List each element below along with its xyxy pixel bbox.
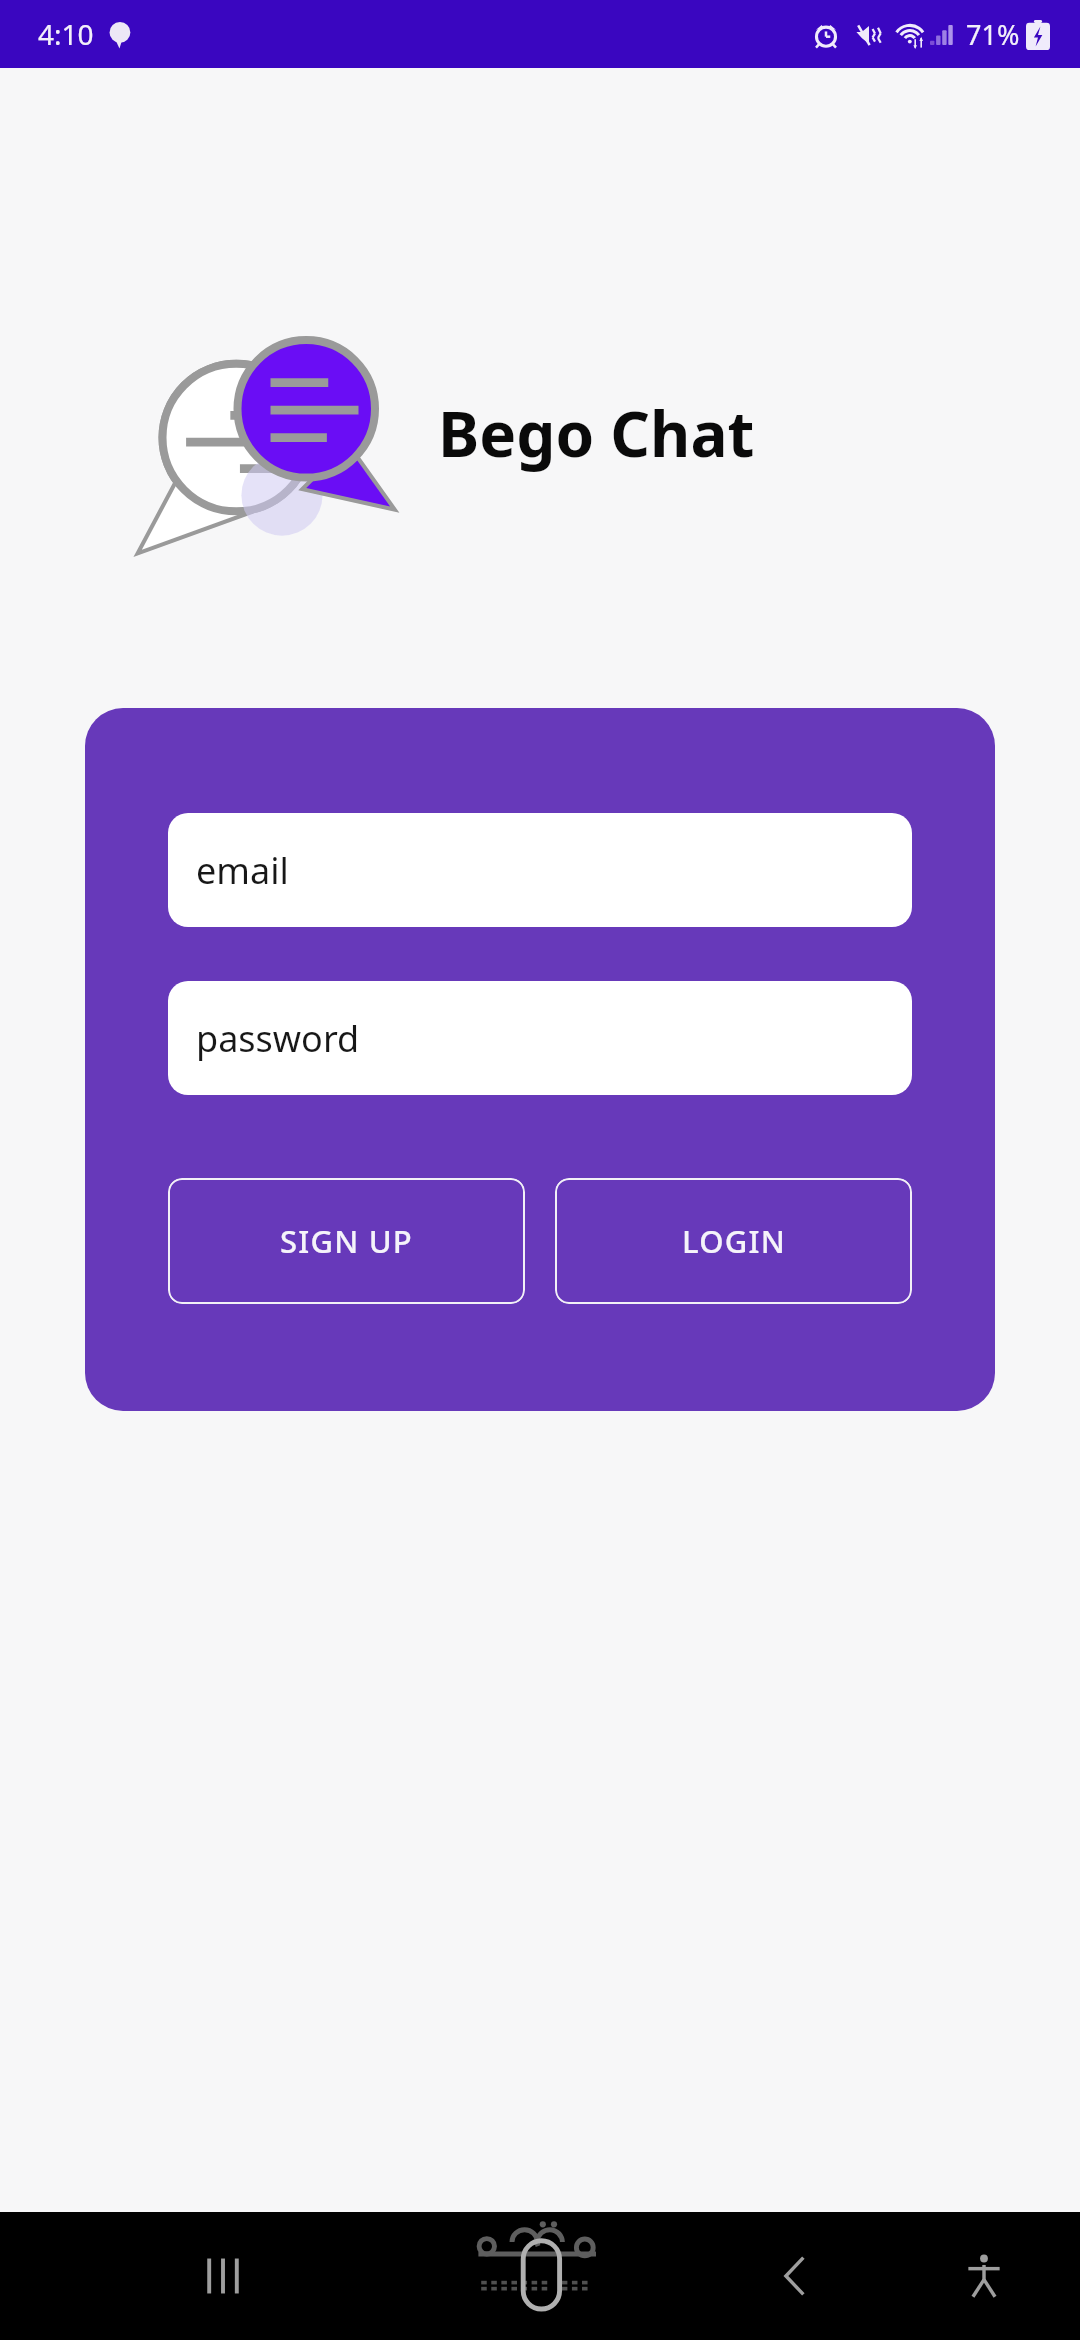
staticText: password [196,1014,360,1063]
button[interactable]: password [168,981,912,1095]
staticText: 4:10 [38,15,94,53]
staticText: SIGN UP [280,1220,413,1262]
button[interactable]: Accessibility [936,2228,1032,2324]
staticText: 71% [966,16,1020,53]
button[interactable]: SIGN UP [168,1178,525,1304]
staticText: Bego Chat [438,391,755,475]
button[interactable]: Back [748,2228,844,2324]
staticText: email [196,846,289,895]
button[interactable]: Home [470,2221,610,2331]
staticText: LOGIN [682,1220,786,1262]
button[interactable]: LOGIN [555,1178,912,1304]
button[interactable]: Recent apps [175,2228,271,2324]
button[interactable]: email [168,813,912,927]
